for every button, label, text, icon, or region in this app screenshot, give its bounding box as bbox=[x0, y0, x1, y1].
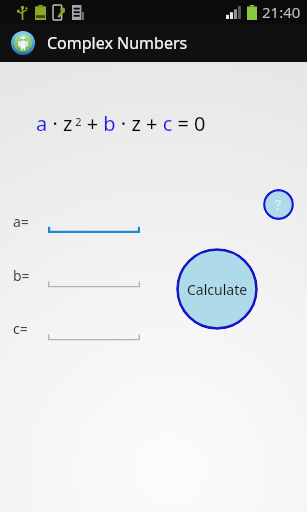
staticText: 21:40 bbox=[262, 2, 301, 22]
button[interactable]: Calculate bbox=[176, 248, 258, 330]
staticText: c= bbox=[13, 319, 28, 338]
staticText: Complex Numbers bbox=[47, 32, 188, 54]
staticText: a= bbox=[13, 212, 29, 231]
staticText: Calculate bbox=[187, 280, 248, 299]
button[interactable]: Input b= bbox=[48, 260, 140, 288]
button[interactable]: Input a= bbox=[48, 206, 140, 234]
staticText: ? bbox=[275, 195, 282, 214]
button[interactable]: Input c= bbox=[48, 313, 140, 341]
staticText: a · z 2 + b · z + c = 0 bbox=[36, 110, 206, 137]
staticText: b= bbox=[13, 266, 30, 285]
button[interactable]: Help bbox=[263, 189, 294, 220]
